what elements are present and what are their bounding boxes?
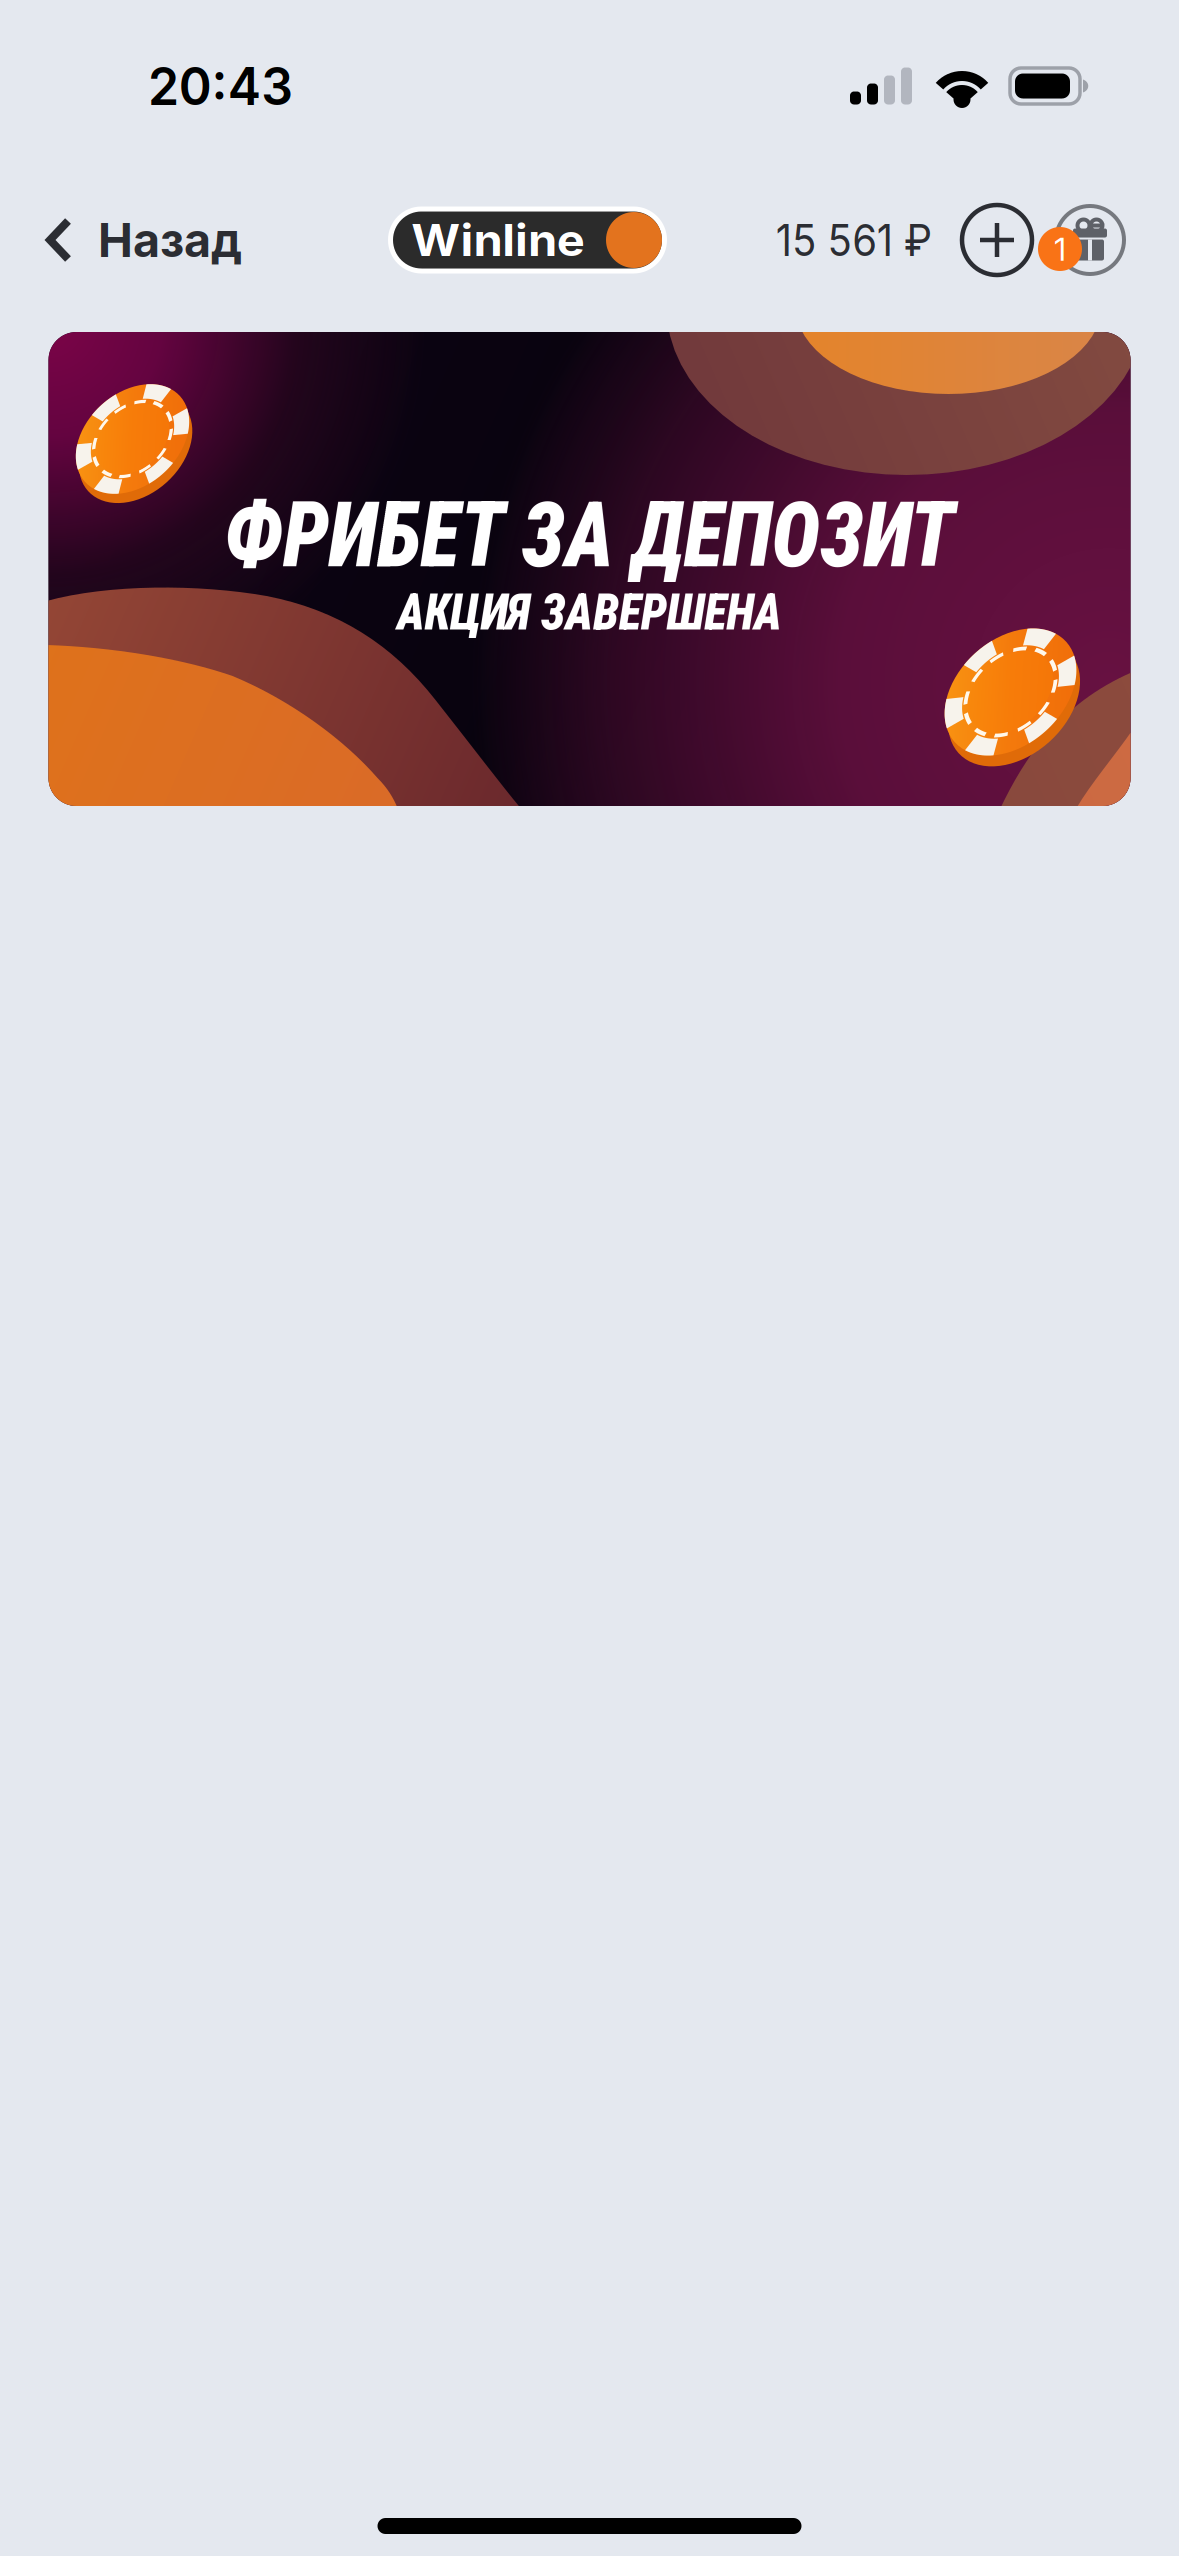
staticText: 20:43	[145, 54, 296, 117]
button[interactable]: Winline	[388, 206, 667, 273]
staticText: 1	[1054, 230, 1066, 268]
button[interactable]: Пополнить счёт	[962, 205, 1032, 275]
staticText: Winline	[417, 213, 579, 267]
staticText: Назад	[98, 212, 242, 268]
button[interactable]: Фрибет за депозит — акция завершена	[48, 332, 1130, 806]
button[interactable]: Назад	[0, 194, 262, 286]
staticText: АКЦИЯ ЗАВЕРШЕНА	[380, 582, 798, 642]
button[interactable]: Бонусы	[1056, 206, 1124, 274]
staticText: 15 561 ₽	[768, 213, 940, 267]
staticText: ФРИБЕТ ЗА ДЕПОЗИТ	[186, 482, 993, 588]
